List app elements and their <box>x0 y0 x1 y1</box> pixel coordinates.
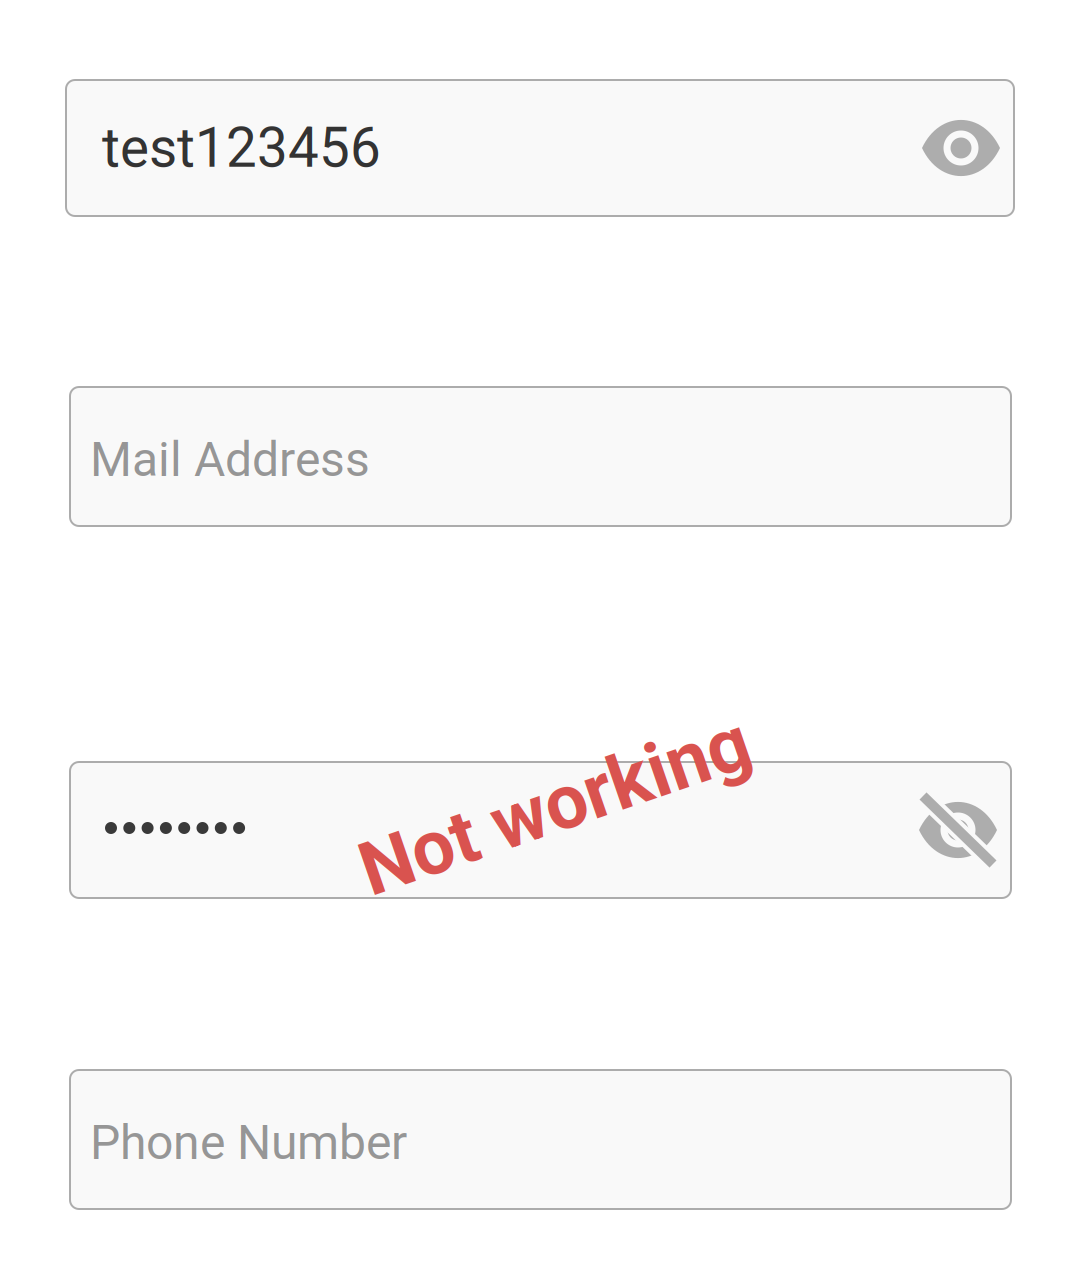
button[interactable]: Show password <box>919 804 1011 856</box>
button[interactable] <box>70 762 1011 898</box>
button[interactable]: Phone Number <box>70 1070 1011 1209</box>
staticText: Phone Number <box>90 1114 407 1171</box>
button[interactable]: Hide text <box>922 122 1014 174</box>
button[interactable]: Mail Address <box>70 387 1011 526</box>
button[interactable]: test123456 <box>66 80 1014 216</box>
staticText: Mail Address <box>90 431 370 488</box>
staticText: test123456 <box>102 116 381 180</box>
staticText: Not working <box>351 762 759 850</box>
